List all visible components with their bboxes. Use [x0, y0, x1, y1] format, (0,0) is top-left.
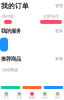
staticText: 我的服务: [1, 28, 21, 34]
button[interactable]: [4, 20, 12, 24]
staticText: 我的: [55, 96, 61, 99]
staticText: 分类: [16, 96, 22, 99]
staticText: 查看: [55, 56, 63, 61]
staticText: 购物: [42, 96, 48, 99]
button[interactable]: 我的: [51, 92, 64, 99]
staticText: 更多: [55, 28, 63, 33]
staticText: 管理: [55, 3, 63, 8]
button[interactable]: 发现: [26, 92, 38, 99]
staticText: 待付款: [2, 14, 14, 19]
staticText: 推荐商品: [1, 56, 21, 62]
button[interactable]: [44, 86, 63, 89]
button[interactable]: 分类: [13, 92, 26, 99]
staticText: 立即支付: [43, 14, 59, 19]
button[interactable]: [1, 86, 20, 89]
staticText: 首页: [3, 96, 9, 99]
staticText: 为你精选: [2, 67, 18, 72]
button[interactable]: 管理: [55, 3, 63, 8]
button[interactable]: [40, 20, 62, 24]
staticText: 发现: [29, 96, 35, 99]
staticText: 我的订单: [1, 2, 29, 10]
button[interactable]: [22, 86, 42, 89]
button[interactable]: 购物: [38, 92, 51, 99]
button[interactable]: 首页: [0, 92, 13, 99]
